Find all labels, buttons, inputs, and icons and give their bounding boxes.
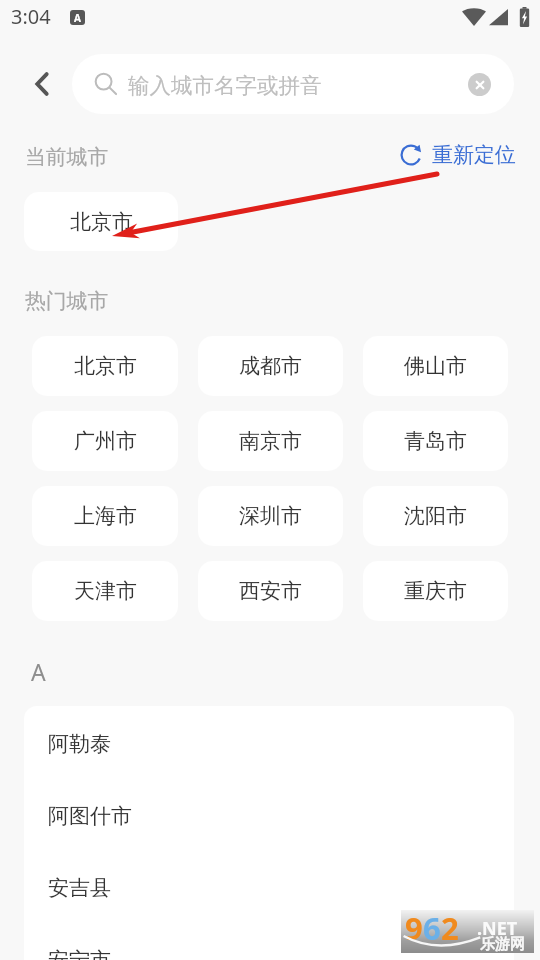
staticText: 沈阳市 bbox=[404, 503, 467, 529]
staticText: 阿图什市 bbox=[48, 803, 132, 829]
button[interactable]: 深圳市 bbox=[198, 486, 343, 546]
staticText: 上海市 bbox=[74, 503, 137, 529]
button[interactable]: 北京市 bbox=[32, 336, 178, 396]
staticText: 3:04 bbox=[11, 3, 51, 30]
staticText: 西安市 bbox=[239, 578, 302, 604]
staticText: 热门城市 bbox=[25, 288, 109, 314]
staticText: 6 bbox=[423, 907, 441, 949]
button[interactable]: 上海市 bbox=[32, 486, 178, 546]
button[interactable]: 重新定位 bbox=[398, 142, 516, 168]
button[interactable]: 安宁市 bbox=[24, 924, 514, 960]
staticText: 输入城市名字或拼音 bbox=[128, 72, 322, 99]
button[interactable]: 安吉县 bbox=[24, 852, 514, 923]
staticText: 天津市 bbox=[74, 578, 137, 604]
staticText: 青岛市 bbox=[404, 428, 467, 454]
button[interactable]: 重庆市 bbox=[363, 561, 508, 621]
staticText: 9 bbox=[405, 907, 423, 949]
staticText: 安吉县 bbox=[48, 875, 111, 901]
staticText: 广州市 bbox=[74, 428, 137, 454]
button[interactable]: 西安市 bbox=[198, 561, 343, 621]
button[interactable]: 成都市 bbox=[198, 336, 343, 396]
button[interactable]: Back bbox=[20, 62, 64, 106]
button[interactable]: 阿勒泰 bbox=[24, 708, 514, 779]
staticText: 佛山市 bbox=[404, 353, 467, 379]
staticText: 当前城市 bbox=[25, 144, 109, 170]
staticText: 乐游网 bbox=[480, 935, 525, 954]
button[interactable]: Clear text bbox=[468, 73, 491, 96]
staticText: 重新定位 bbox=[432, 142, 516, 168]
staticText: 北京市 bbox=[74, 353, 137, 379]
staticText: 深圳市 bbox=[239, 503, 302, 529]
button[interactable]: 北京市 bbox=[24, 192, 178, 251]
staticText: 重庆市 bbox=[404, 578, 467, 604]
button[interactable]: 沈阳市 bbox=[363, 486, 508, 546]
staticText: 安宁市 bbox=[48, 947, 111, 960]
staticText: 成都市 bbox=[239, 353, 302, 379]
button[interactable]: 佛山市 bbox=[363, 336, 508, 396]
button[interactable]: 阿图什市 bbox=[24, 780, 514, 851]
button[interactable]: 输入城市名字或拼音 bbox=[72, 54, 514, 114]
staticText: A bbox=[74, 11, 81, 25]
button[interactable]: 青岛市 bbox=[363, 411, 508, 471]
staticText: 北京市 bbox=[70, 209, 133, 235]
staticText: 2 bbox=[441, 907, 459, 949]
staticText: 阿勒泰 bbox=[48, 731, 111, 757]
button[interactable]: 广州市 bbox=[32, 411, 178, 471]
staticText: A bbox=[31, 656, 46, 687]
button[interactable]: 天津市 bbox=[32, 561, 178, 621]
staticText: 南京市 bbox=[239, 428, 302, 454]
button[interactable]: 南京市 bbox=[198, 411, 343, 471]
staticText: .NET bbox=[477, 916, 518, 941]
